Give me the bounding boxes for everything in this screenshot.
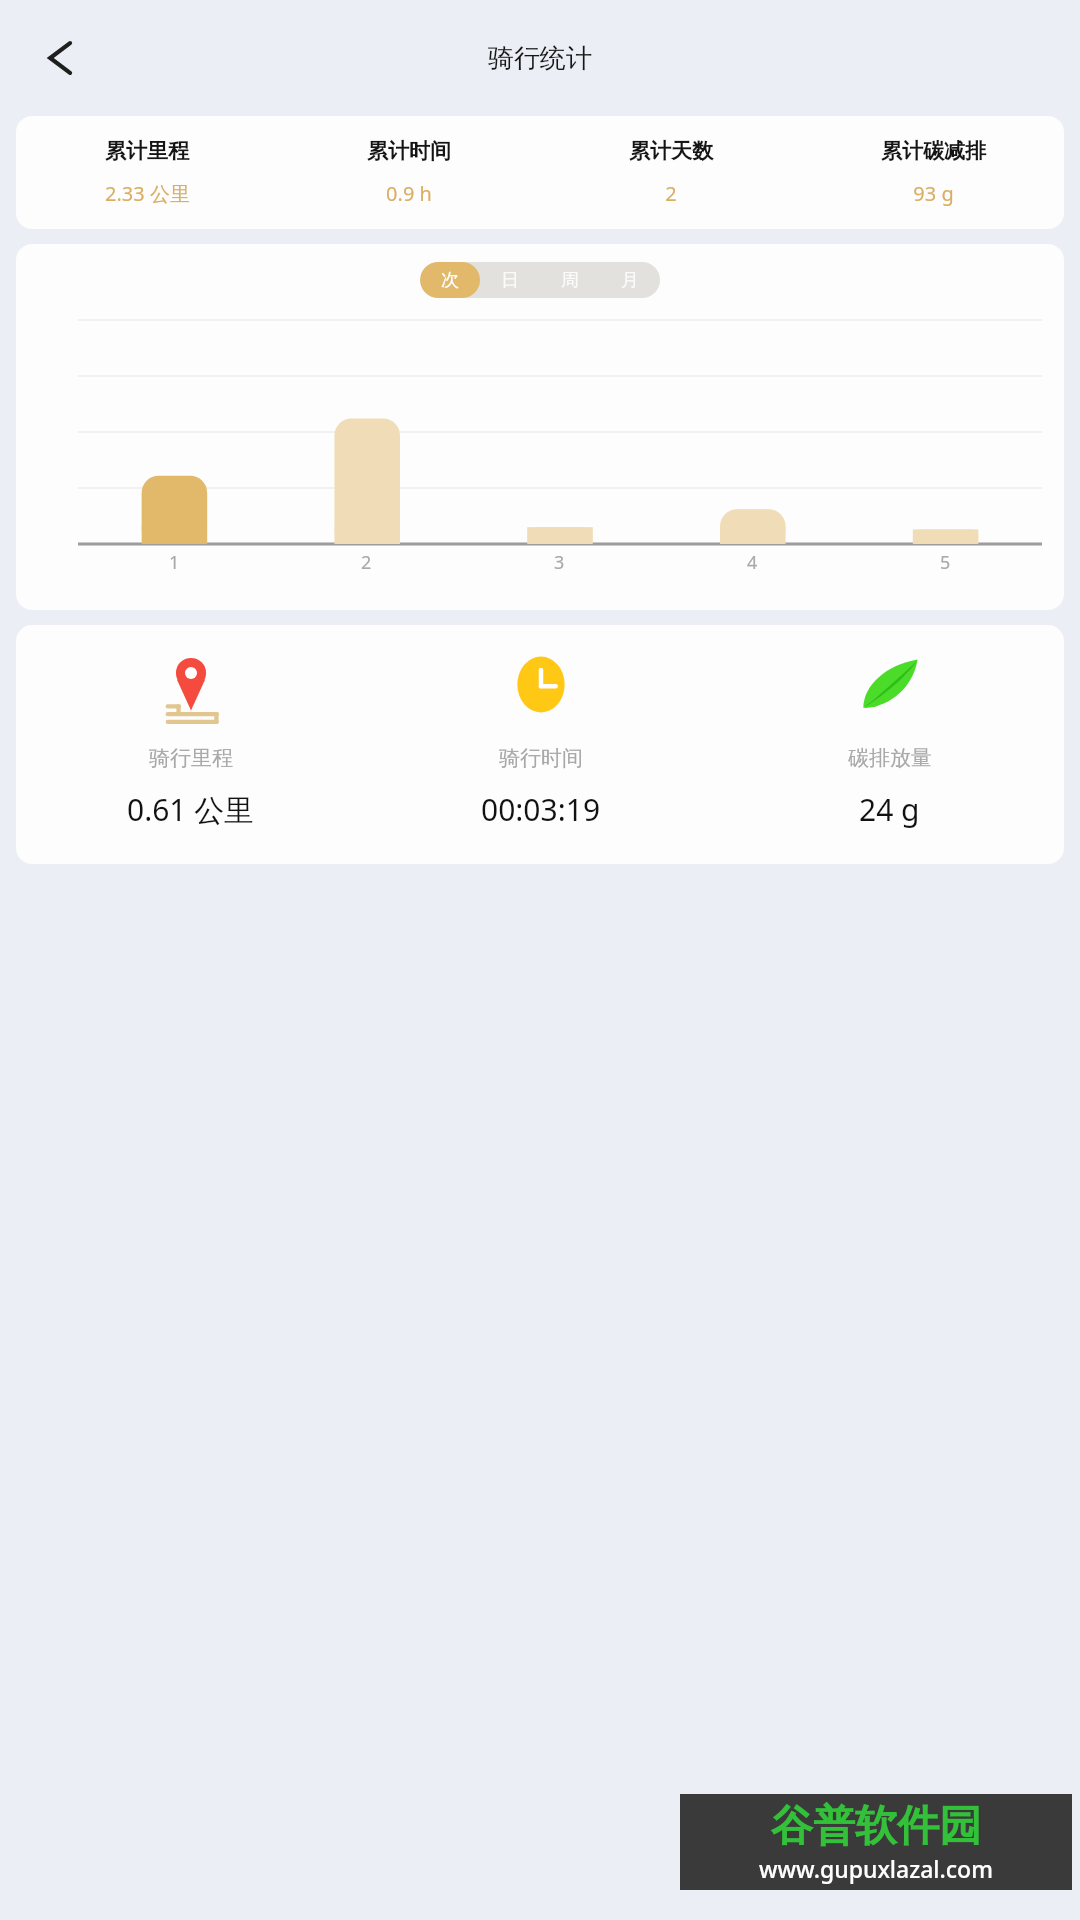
staticText: 0.61 公里 [127, 789, 255, 830]
staticText: 累计时间 [367, 138, 451, 164]
staticText: 累计碳减排 [881, 138, 986, 164]
staticText: 骑行时间 [499, 745, 583, 771]
staticText: 骑行里程 [149, 745, 233, 771]
staticText: 00:03:19 [481, 789, 601, 830]
staticText: 2 [361, 550, 372, 575]
staticText: 累计天数 [629, 138, 713, 164]
button[interactable]: 骑行时间 [366, 651, 715, 830]
staticText: 周 [561, 269, 579, 292]
staticText: 24 g [859, 789, 920, 830]
staticText: 2.33 公里 [105, 180, 190, 207]
button[interactable]: 碳排放量 [715, 651, 1064, 830]
button[interactable]: 骑行里程 [16, 625, 1064, 864]
staticText: 次 [441, 269, 459, 292]
staticText: 月 [621, 269, 639, 292]
button[interactable]: 次 [420, 262, 480, 298]
button[interactable]: 月 [600, 262, 660, 298]
staticText: 4 [747, 550, 758, 575]
staticText: 骑行统计 [488, 42, 592, 75]
staticText: 1 [169, 550, 180, 575]
button[interactable]: 日 [480, 262, 540, 298]
button[interactable]: 累计里程 [16, 116, 1064, 229]
staticText: 93 g [913, 180, 954, 207]
button[interactable]: 周 [540, 262, 600, 298]
staticText: 3 [554, 550, 565, 575]
staticText: 累计里程 [105, 138, 189, 164]
staticText: 谷普软件园 [771, 1800, 981, 1853]
staticText: 2 [665, 180, 677, 207]
staticText: 5 [940, 550, 951, 575]
staticText: 碳排放量 [848, 745, 932, 771]
staticText: 0.9 h [386, 180, 432, 207]
staticText: 日 [501, 269, 519, 292]
button[interactable]: Back [26, 27, 88, 89]
button[interactable]: 骑行里程 [16, 651, 366, 830]
staticText: www.gupuxlazal.com [759, 1853, 993, 1884]
